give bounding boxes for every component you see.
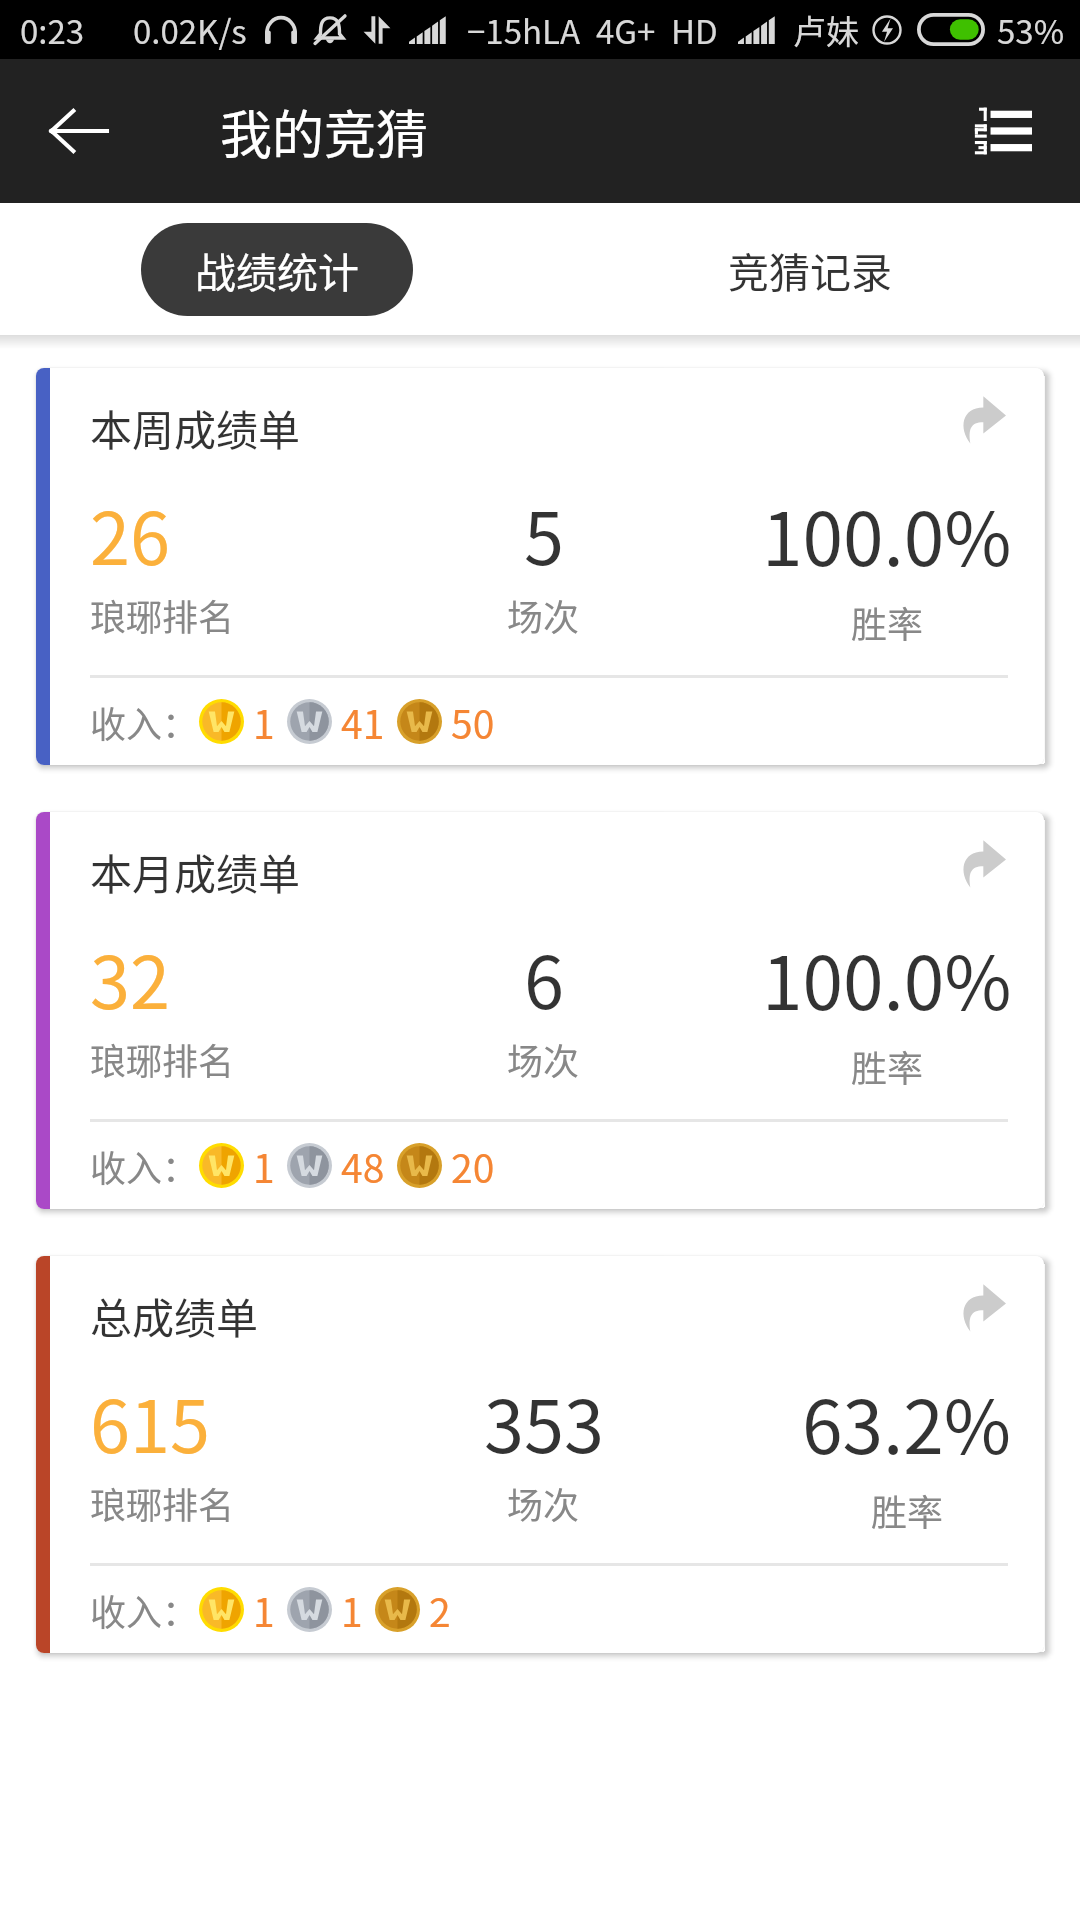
staticText: 32 — [90, 925, 170, 1029]
staticText: 卢妹 — [793, 6, 859, 54]
staticText: 41 — [341, 694, 385, 750]
staticText: 1 — [253, 1138, 275, 1194]
button[interactable]: Share — [943, 826, 1015, 898]
staticText: 2 — [429, 1582, 451, 1638]
staticText: 胜率 — [851, 1040, 924, 1092]
button[interactable]: Ranking list — [948, 76, 1058, 186]
button[interactable]: Share — [943, 1270, 1015, 1342]
staticText: 50 — [451, 694, 495, 750]
staticText: 48 — [341, 1138, 385, 1194]
button[interactable]: 本周成绩单 — [36, 368, 1044, 765]
staticText: 我的竞猜 — [220, 94, 429, 169]
staticText: 53% — [997, 6, 1064, 54]
staticText: 26 — [90, 481, 170, 585]
staticText: 竞猜记录 — [728, 240, 892, 299]
staticText: 胜率 — [851, 596, 924, 648]
staticText: 100.0% — [762, 481, 1012, 587]
staticText: 收入： — [90, 696, 199, 748]
staticText: 场次 — [507, 589, 580, 641]
staticText: 本周成绩单 — [90, 397, 301, 458]
staticText: 353 — [484, 1369, 604, 1473]
staticText: 5 — [524, 481, 564, 585]
staticText: 615 — [90, 1369, 210, 1473]
staticText: 1 — [253, 1582, 275, 1638]
button[interactable]: 本月成绩单 — [36, 812, 1044, 1209]
staticText: 场次 — [507, 1477, 580, 1529]
button[interactable]: 战绩统计 — [141, 223, 413, 316]
staticText: 场次 — [507, 1033, 580, 1085]
staticText: 0.02K/s — [133, 6, 247, 54]
staticText: 琅琊排名 — [90, 589, 235, 641]
staticText: 4G+ — [596, 6, 656, 54]
button[interactable]: 竞猜记录 — [540, 203, 1080, 335]
staticText: 100.0% — [762, 925, 1012, 1031]
staticText: 收入： — [90, 1140, 199, 1192]
staticText: 琅琊排名 — [90, 1477, 235, 1529]
staticText: 胜率 — [871, 1484, 944, 1536]
staticText: 6 — [524, 925, 564, 1029]
staticText: 琅琊排名 — [90, 1033, 235, 1085]
button[interactable]: Share — [943, 382, 1015, 454]
staticText: 本月成绩单 — [90, 841, 301, 902]
staticText: 0:23 — [20, 6, 85, 54]
button[interactable]: 总成绩单 — [36, 1256, 1044, 1653]
staticText: 收入： — [90, 1584, 199, 1636]
button[interactable]: Back — [30, 83, 126, 179]
staticText: −15hLA — [467, 6, 581, 54]
staticText: 总成绩单 — [90, 1285, 259, 1346]
staticText: HD — [671, 6, 718, 54]
staticText: 63.2% — [802, 1369, 1012, 1475]
staticText: 战绩统计 — [195, 240, 359, 299]
staticText: 1 — [341, 1582, 363, 1638]
staticText: 20 — [451, 1138, 495, 1194]
staticText: 1 — [253, 694, 275, 750]
